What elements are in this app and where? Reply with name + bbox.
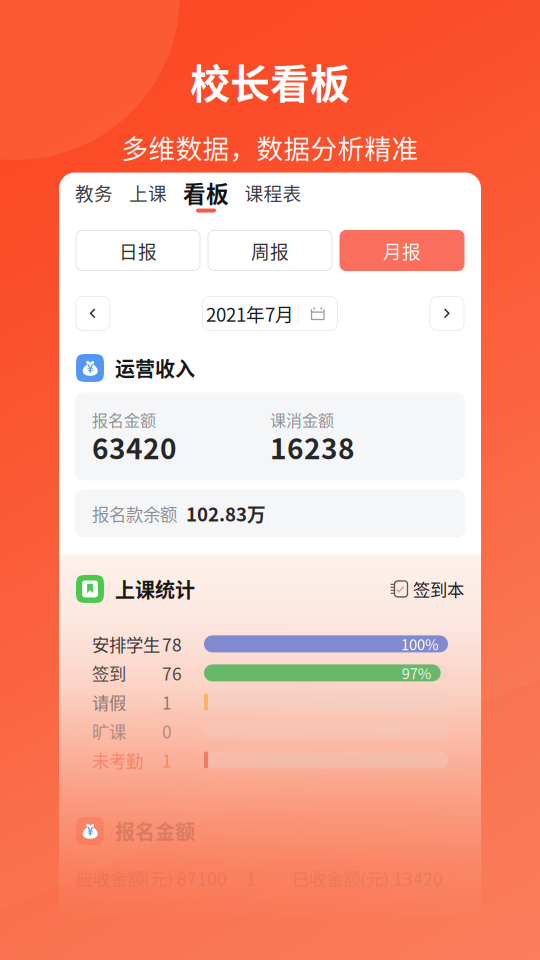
staticText: 报名款余额 bbox=[92, 501, 177, 526]
button[interactable]: 教务 bbox=[74, 180, 114, 214]
staticText: 课程表 bbox=[244, 179, 301, 206]
staticText: 签到本 bbox=[413, 576, 464, 601]
staticText: 76 bbox=[162, 660, 182, 685]
staticText: 1 bbox=[246, 865, 256, 890]
staticText: 100% bbox=[401, 633, 439, 654]
staticText: 签到 bbox=[92, 660, 126, 685]
button[interactable]: 上课 bbox=[128, 180, 168, 214]
button[interactable]: 日报 bbox=[76, 230, 200, 270]
staticText: 0 bbox=[162, 718, 172, 743]
staticText: 看板 bbox=[183, 176, 229, 209]
button[interactable]: 上个月 bbox=[76, 296, 110, 330]
staticText: ¥ bbox=[87, 823, 93, 839]
staticText: ¥ bbox=[87, 360, 93, 376]
button[interactable]: 签到本 bbox=[390, 576, 464, 601]
staticText: 1 bbox=[162, 747, 172, 772]
staticText: 旷课 bbox=[92, 718, 126, 743]
button[interactable]: 周报 bbox=[208, 230, 332, 270]
button[interactable]: 课程表 bbox=[244, 180, 302, 214]
staticText: 未考勤 bbox=[92, 747, 143, 772]
staticText: 日报 bbox=[119, 237, 157, 264]
staticText: 63420 bbox=[92, 427, 177, 467]
button[interactable]: 月报 bbox=[340, 230, 464, 270]
staticText: 校长看板 bbox=[190, 52, 350, 110]
staticText: 上课统计 bbox=[115, 574, 195, 603]
button[interactable]: 下个月 bbox=[430, 296, 464, 330]
staticText: 16238 bbox=[270, 427, 355, 467]
button[interactable]: 看板 bbox=[182, 180, 230, 214]
staticText: 多维数据，数据分析精准 bbox=[121, 128, 418, 166]
staticText: 102.83万 bbox=[186, 500, 266, 527]
staticText: 周报 bbox=[251, 237, 289, 264]
staticText: 报名金额 bbox=[92, 408, 156, 431]
staticText: 2021年7月 bbox=[206, 300, 294, 327]
staticText: 上课 bbox=[129, 179, 167, 206]
staticText: 78 bbox=[162, 631, 182, 656]
staticText: 课消金额 bbox=[270, 408, 334, 431]
staticText: 应收金额(元) 87100 bbox=[76, 865, 227, 890]
staticText: 月报 bbox=[383, 237, 421, 264]
staticText: 教务 bbox=[75, 179, 113, 206]
staticText: 1 bbox=[162, 689, 172, 714]
staticText: 报名金额 bbox=[115, 816, 195, 845]
staticText: 运营收入 bbox=[115, 353, 195, 382]
staticText: 已收金额(元) 13420 bbox=[292, 865, 443, 890]
button[interactable]: 2021年7月 bbox=[202, 296, 337, 330]
staticText: 请假 bbox=[92, 689, 126, 714]
staticText: 97% bbox=[402, 662, 432, 683]
staticText: 安排学生 bbox=[92, 631, 160, 656]
